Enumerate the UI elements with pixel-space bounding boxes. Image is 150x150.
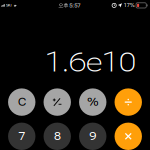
staticText: 오후 5:57 (58, 2, 80, 9)
staticText: 1.6e10 (45, 47, 136, 78)
button[interactable]: % (79, 88, 106, 116)
staticText: 7 (18, 130, 25, 142)
button[interactable]: 8 (44, 123, 71, 150)
staticText: 8 (54, 130, 61, 142)
staticText: C (18, 96, 26, 108)
staticText: % (87, 96, 98, 108)
button[interactable]: C (8, 88, 35, 116)
staticText: 17% (124, 3, 135, 8)
button[interactable]: 9 (79, 123, 106, 150)
button[interactable]: ÷ (115, 88, 142, 116)
button[interactable]: 7 (8, 123, 35, 150)
staticText: SKT (6, 3, 12, 7)
button[interactable]: × (115, 123, 142, 150)
button[interactable]: +/- (44, 88, 71, 116)
staticText: 9 (89, 130, 96, 142)
